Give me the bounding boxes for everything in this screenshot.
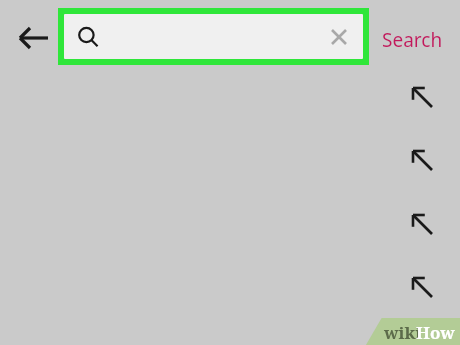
button[interactable]: Clear search	[328, 26, 350, 48]
staticText: Search	[382, 27, 443, 53]
staticText: How	[416, 321, 455, 344]
button[interactable]: Search field	[64, 14, 363, 59]
staticText: wiki	[384, 321, 422, 344]
button[interactable]: Back	[12, 20, 56, 56]
other: Search field	[78, 27, 98, 47]
button[interactable]: Search	[378, 18, 452, 58]
